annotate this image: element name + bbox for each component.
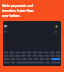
button[interactable]: App preview — [3, 21, 61, 66]
staticText: Make payments and transfers faster than … — [2, 4, 64, 18]
